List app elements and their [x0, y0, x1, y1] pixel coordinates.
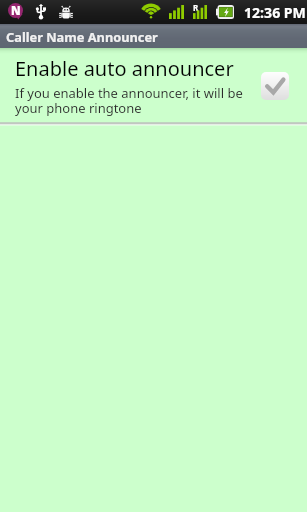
staticText: R — [193, 2, 199, 13]
staticText: 12:36 PM — [244, 3, 306, 22]
staticText: If you enable the announcer, it will be … — [15, 84, 255, 117]
staticText: Enable auto announcer — [15, 55, 234, 82]
staticText: Caller Name Announcer — [6, 28, 158, 45]
staticText: N — [11, 3, 21, 18]
button[interactable]: Enable auto announcer — [0, 48, 307, 122]
